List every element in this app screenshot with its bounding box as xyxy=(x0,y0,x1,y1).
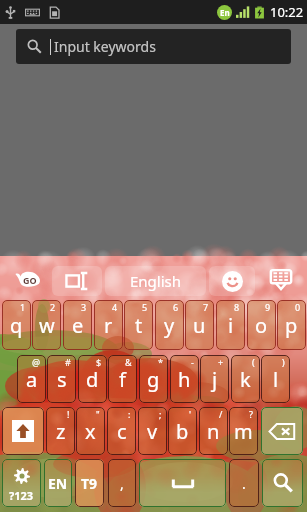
button[interactable]: Emoji xyxy=(209,266,255,296)
button[interactable]: ( xyxy=(231,355,260,403)
button[interactable]: Hide keyboard xyxy=(266,267,296,291)
staticText: w xyxy=(39,312,55,339)
staticText: & xyxy=(125,356,132,368)
staticText: s xyxy=(57,366,67,393)
staticText: 5 xyxy=(142,301,148,313)
button[interactable]: Search xyxy=(262,459,303,507)
button[interactable]: - xyxy=(170,355,199,403)
staticText: i xyxy=(228,312,234,339)
button[interactable]: 5 xyxy=(124,300,153,350)
button[interactable]: * xyxy=(139,355,168,403)
staticText: / xyxy=(219,408,223,420)
button[interactable]: " xyxy=(76,407,105,455)
staticText: f xyxy=(119,366,126,393)
staticText: 2 xyxy=(50,301,56,313)
button[interactable]: / xyxy=(199,407,228,455)
staticText: v xyxy=(147,418,158,445)
staticText: o xyxy=(255,312,268,339)
staticText: 9 xyxy=(265,301,271,313)
staticText: n xyxy=(207,418,220,445)
button[interactable]: . xyxy=(229,459,259,507)
staticText: 0 xyxy=(295,301,301,313)
staticText: ' xyxy=(189,408,192,420)
staticText: 4 xyxy=(112,301,118,313)
staticText: l xyxy=(273,366,279,393)
button[interactable]: + xyxy=(200,355,229,403)
staticText: 1 xyxy=(20,301,26,313)
staticText: - xyxy=(191,356,194,368)
staticText: * xyxy=(158,356,163,368)
button[interactable]: 3 xyxy=(63,300,92,350)
button[interactable]: # xyxy=(47,355,76,403)
button[interactable]: 8 xyxy=(216,300,245,350)
staticText: 8 xyxy=(234,301,240,313)
button[interactable]: 7 xyxy=(185,300,214,350)
staticText: 7 xyxy=(203,301,209,313)
button[interactable]: Space xyxy=(139,459,226,507)
staticText: e xyxy=(72,312,84,339)
staticText: # xyxy=(65,356,71,368)
button[interactable]: Theme xyxy=(52,266,102,296)
staticText: . xyxy=(242,474,246,493)
staticText: English xyxy=(130,271,182,291)
button[interactable]: 0 xyxy=(277,300,306,350)
staticText: " xyxy=(96,408,100,420)
button[interactable]: ) xyxy=(261,355,290,403)
staticText: y xyxy=(164,312,175,339)
button[interactable]: T9 xyxy=(75,459,104,507)
staticText: GO xyxy=(23,274,37,286)
button[interactable]: Backspace xyxy=(261,407,303,455)
staticText: : xyxy=(128,408,131,420)
staticText: , xyxy=(120,474,124,493)
staticText: j xyxy=(212,366,218,393)
staticText: a xyxy=(26,366,38,393)
staticText: x xyxy=(85,418,96,445)
button[interactable]: @ xyxy=(17,355,46,403)
staticText: $ xyxy=(96,356,102,368)
staticText: p xyxy=(285,312,298,339)
button[interactable]: Symbols xyxy=(2,459,41,507)
staticText: 10:22 xyxy=(270,3,304,21)
staticText: k xyxy=(240,366,251,393)
staticText: ?123 xyxy=(9,488,34,503)
staticText: b xyxy=(176,418,189,445)
button[interactable]: ! xyxy=(46,407,75,455)
staticText: ! xyxy=(67,408,70,420)
button[interactable]: 1 xyxy=(2,300,31,350)
button[interactable]: 4 xyxy=(94,300,123,350)
staticText: c xyxy=(117,418,127,445)
button[interactable]: Shift xyxy=(2,407,44,455)
staticText: + xyxy=(218,356,224,368)
staticText: ; xyxy=(159,408,162,420)
button[interactable]: 2 xyxy=(32,300,61,350)
staticText: ( xyxy=(252,356,255,368)
staticText: z xyxy=(56,418,66,445)
staticText: g xyxy=(147,366,160,393)
button[interactable]: English xyxy=(105,266,206,296)
button[interactable]: GO Keyboard xyxy=(14,270,42,288)
button[interactable]: 6 xyxy=(155,300,184,350)
staticText: r xyxy=(104,312,113,339)
button[interactable]: & xyxy=(108,355,137,403)
staticText: 3 xyxy=(81,301,87,313)
button[interactable]: ; xyxy=(138,407,167,455)
button[interactable]: EN xyxy=(44,459,72,507)
button[interactable]: : xyxy=(107,407,136,455)
staticText: q xyxy=(10,312,23,339)
staticText: h xyxy=(178,366,191,393)
button[interactable]: Input keywords xyxy=(16,29,291,64)
button[interactable]: ? xyxy=(229,407,258,455)
staticText: EN xyxy=(48,474,68,493)
button[interactable]: 9 xyxy=(247,300,276,350)
staticText: Input keywords xyxy=(54,37,156,56)
staticText: En xyxy=(220,7,230,18)
button[interactable]: , xyxy=(108,459,136,507)
staticText: m xyxy=(234,418,253,445)
button[interactable]: ' xyxy=(168,407,197,455)
staticText: t xyxy=(135,312,143,339)
staticText: T9 xyxy=(81,474,98,493)
staticText: @ xyxy=(32,356,41,368)
button[interactable]: $ xyxy=(78,355,107,403)
staticText: ) xyxy=(282,356,285,368)
staticText: d xyxy=(86,366,99,393)
